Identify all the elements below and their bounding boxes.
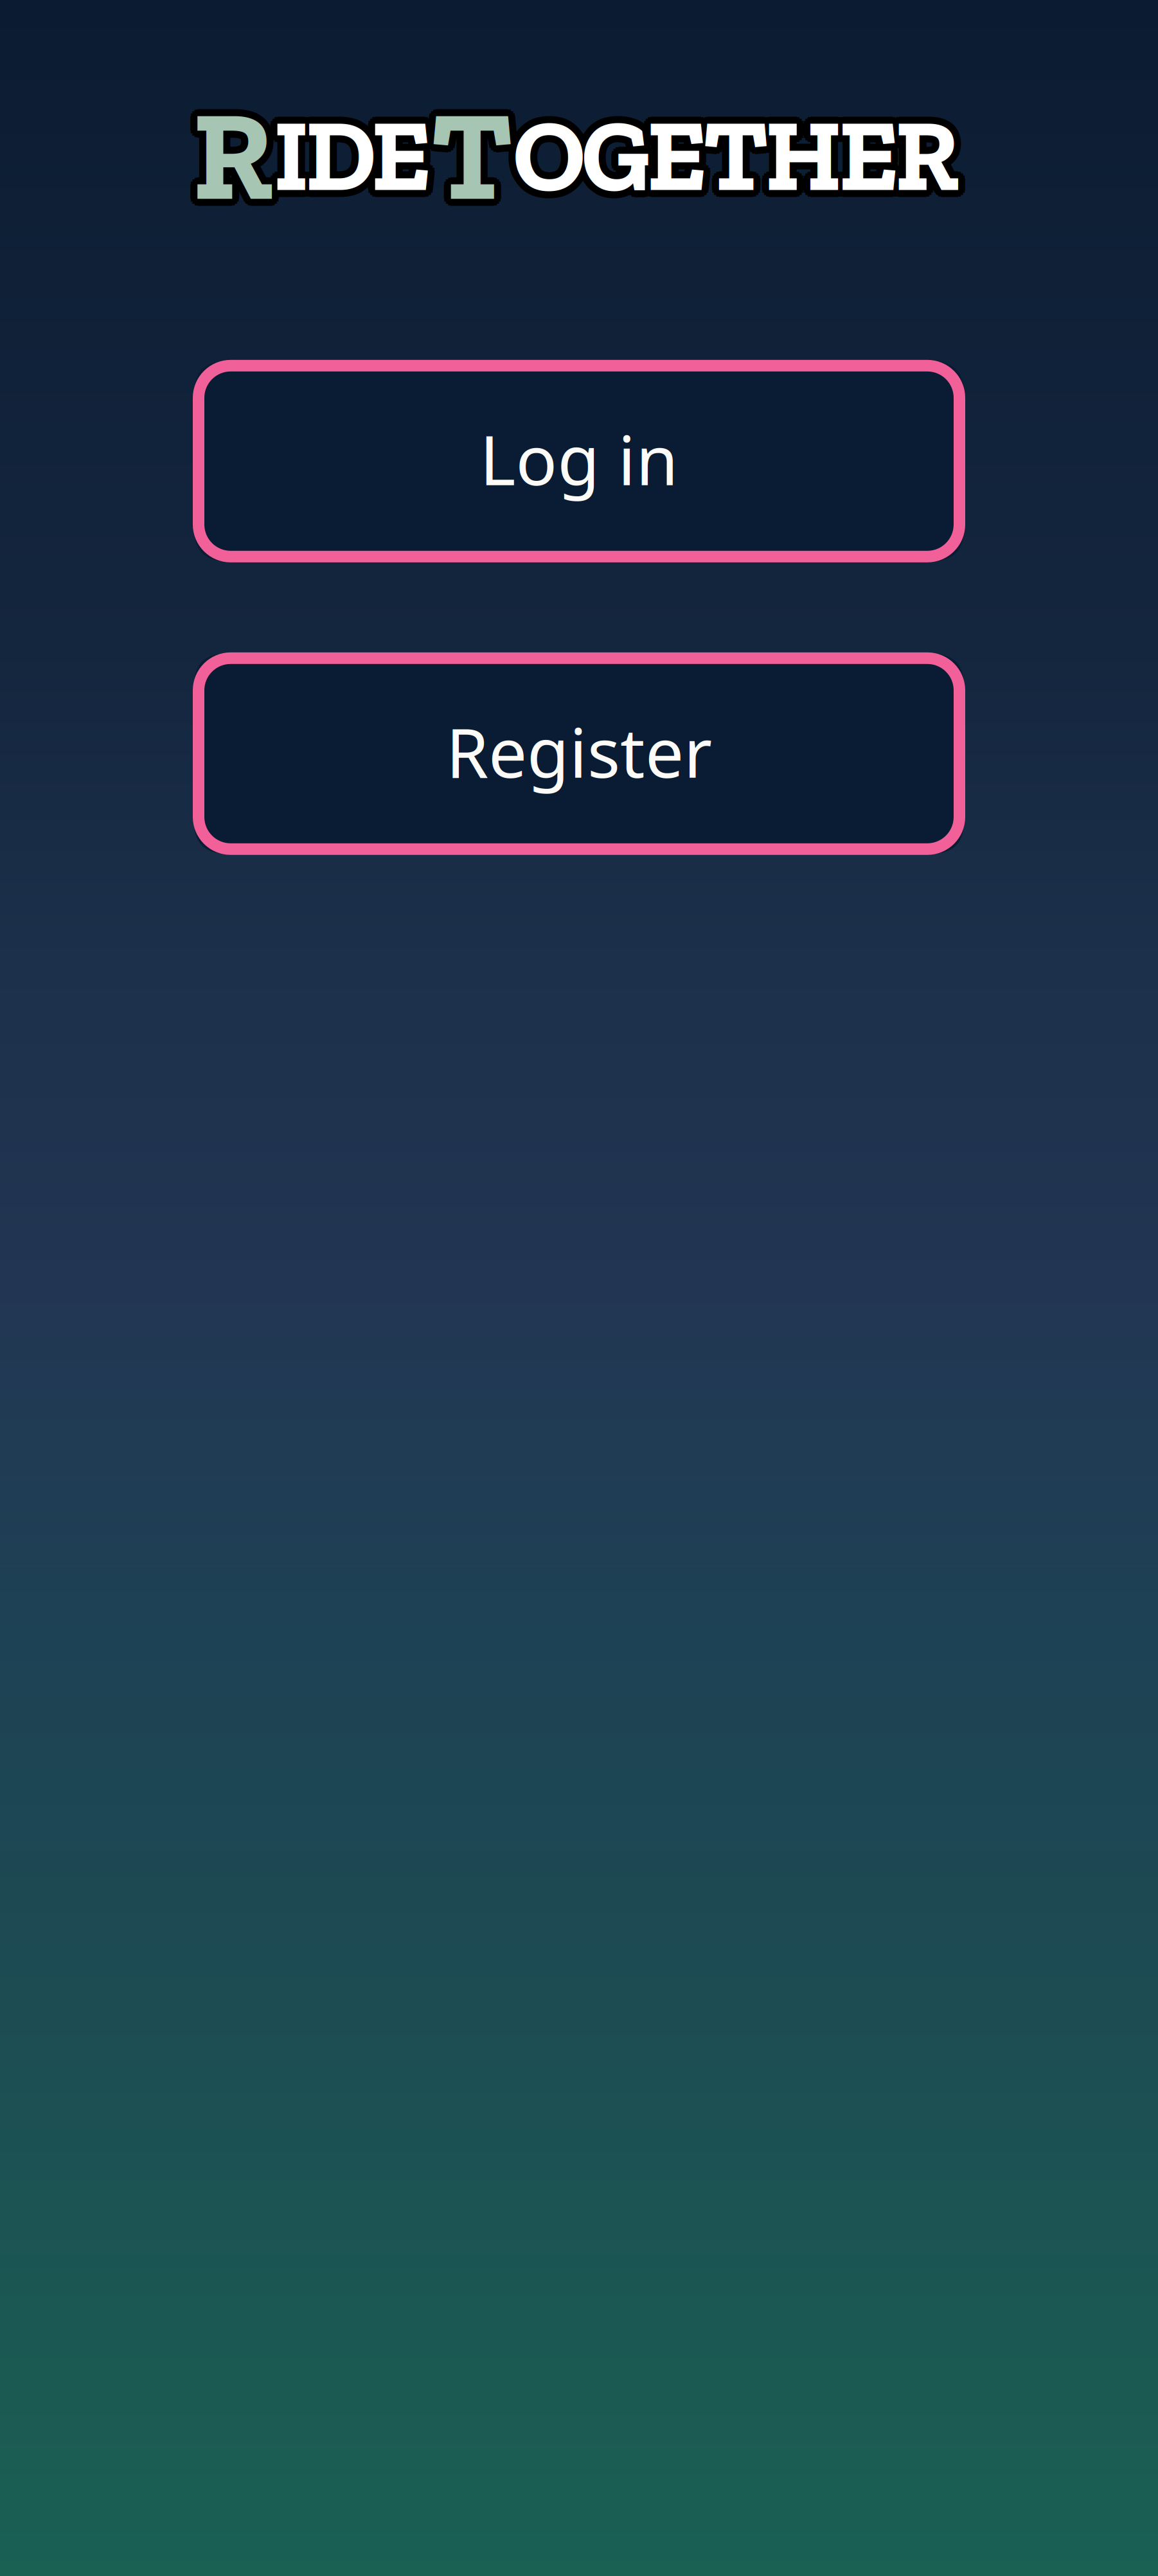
staticText: T xyxy=(434,73,516,225)
staticText: T xyxy=(436,84,518,236)
staticText: IDE xyxy=(273,87,431,209)
staticText: IDE xyxy=(271,97,428,219)
staticText: R xyxy=(189,78,270,230)
staticText: T xyxy=(428,76,510,229)
staticText: R xyxy=(192,86,273,238)
staticText: T xyxy=(434,86,516,238)
staticText: R xyxy=(197,84,278,236)
staticText: Register xyxy=(446,706,712,797)
staticText: R xyxy=(194,75,275,228)
staticText: R xyxy=(192,72,273,224)
staticText: R xyxy=(187,84,268,236)
staticText: T xyxy=(431,86,513,238)
staticText: R xyxy=(187,74,268,226)
staticText: OGETHER xyxy=(506,95,952,216)
staticText: IDE xyxy=(275,98,432,219)
button[interactable]: Log in xyxy=(193,360,965,562)
staticText: R xyxy=(196,79,277,231)
staticText: IDE xyxy=(278,89,436,211)
staticText: T xyxy=(434,76,516,229)
staticText: OGETHER xyxy=(510,88,956,209)
staticText: OGETHER xyxy=(510,92,956,213)
staticText: OGETHER xyxy=(520,92,966,213)
staticText: OGETHER xyxy=(507,97,953,219)
staticText: R xyxy=(195,76,276,229)
staticText: T xyxy=(428,73,510,225)
staticText: T xyxy=(426,74,508,226)
staticText: T xyxy=(427,78,510,230)
staticText: R xyxy=(190,76,271,229)
staticText: OGETHER xyxy=(508,100,954,221)
staticText: OGETHER xyxy=(509,95,955,216)
staticText: IDE xyxy=(277,93,434,214)
staticText: OGETHER xyxy=(516,97,962,219)
staticText: T xyxy=(424,76,507,229)
staticText: OGETHER xyxy=(513,102,959,223)
staticText: OGETHER xyxy=(515,98,961,219)
staticText: OGETHER xyxy=(508,89,954,211)
staticText: T xyxy=(432,75,515,228)
staticText: R xyxy=(195,86,276,238)
staticText: IDE xyxy=(276,92,434,213)
staticText: IDE xyxy=(266,95,424,216)
staticText: T xyxy=(437,82,520,234)
staticText: T xyxy=(428,82,510,234)
staticText: R xyxy=(190,82,271,234)
staticText: R xyxy=(195,82,276,234)
button[interactable]: Register xyxy=(193,652,965,855)
staticText: IDE xyxy=(276,97,434,219)
staticText: IDE xyxy=(280,92,437,213)
staticText: OGETHER xyxy=(516,101,962,222)
staticText: IDE xyxy=(267,97,424,219)
staticText: R xyxy=(197,74,278,226)
staticText: IDE xyxy=(267,92,424,213)
staticText: OGETHER xyxy=(510,96,956,217)
staticText: R xyxy=(196,81,277,233)
staticText: OGETHER xyxy=(520,95,966,216)
staticText: IDE xyxy=(270,95,427,216)
staticText: IDE xyxy=(277,96,434,217)
staticText: IDE xyxy=(276,88,434,209)
staticText: OGETHER xyxy=(510,97,956,219)
staticText: IDE xyxy=(270,93,427,214)
staticText: T xyxy=(428,86,510,238)
staticText: R xyxy=(199,82,280,234)
staticText: IDE xyxy=(273,98,431,220)
staticText: OGETHER xyxy=(516,88,962,209)
staticText: IDE xyxy=(276,101,434,222)
staticText: R xyxy=(194,83,275,235)
staticText: Log in xyxy=(480,413,678,504)
staticText: R xyxy=(190,73,271,225)
staticText: T xyxy=(438,79,520,231)
staticText: IDE xyxy=(273,91,431,212)
staticText: T xyxy=(424,82,507,234)
staticText: OGETHER xyxy=(513,87,959,209)
staticText: T xyxy=(434,82,516,234)
staticText: T xyxy=(429,75,512,228)
staticText: IDE xyxy=(278,100,436,221)
staticText: OGETHER xyxy=(512,98,958,219)
staticText: R xyxy=(186,82,267,234)
staticText: OGETHER xyxy=(517,95,963,216)
staticText: OGETHER xyxy=(515,91,961,212)
staticText: R xyxy=(191,83,272,235)
staticText: T xyxy=(431,79,513,231)
staticText: IDE xyxy=(277,95,435,216)
staticText: OGETHER xyxy=(517,93,963,214)
staticText: OGETHER xyxy=(512,91,958,212)
staticText: T xyxy=(427,79,509,231)
staticText: IDE xyxy=(271,92,428,213)
staticText: OGETHER xyxy=(520,97,966,219)
staticText: IDE xyxy=(270,96,427,217)
staticText: T xyxy=(431,75,513,227)
staticText: R xyxy=(195,73,276,225)
staticText: IDE xyxy=(281,95,438,216)
staticText: T xyxy=(426,84,508,236)
staticText: IDE xyxy=(271,101,428,222)
staticText: T xyxy=(431,72,513,224)
staticText: R xyxy=(185,79,266,231)
staticText: IDE xyxy=(275,91,432,212)
staticText: T xyxy=(424,79,506,231)
staticText: OGETHER xyxy=(513,95,959,216)
staticText: R xyxy=(192,79,273,231)
